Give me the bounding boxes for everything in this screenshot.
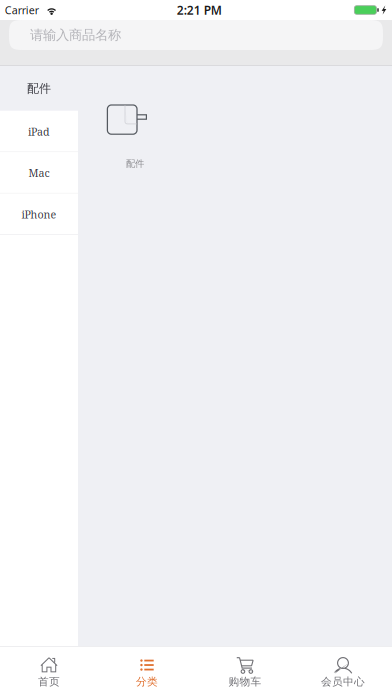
button[interactable]: iPad	[0, 111, 78, 152]
button[interactable]: 配件	[0, 66, 78, 111]
staticText: 会员中心	[321, 675, 365, 688]
staticText: 配件	[27, 81, 51, 96]
staticText: 分类	[136, 675, 158, 688]
staticText: Mac	[28, 166, 49, 180]
staticText: Carrier	[5, 3, 39, 17]
button[interactable]: Mac	[0, 152, 78, 194]
button[interactable]: 分类	[98, 646, 196, 696]
staticText: 配件	[126, 158, 144, 169]
button[interactable]: 购物车	[196, 646, 294, 696]
button[interactable]: 首页	[0, 646, 98, 696]
staticText: iPhone	[21, 207, 56, 221]
button[interactable]: 配件	[78, 105, 182, 169]
button[interactable]: iPhone	[0, 194, 78, 235]
staticText: 请输入商品名称	[30, 27, 121, 43]
staticText: 购物车	[228, 675, 261, 688]
staticText: 首页	[38, 675, 60, 688]
button[interactable]: 请输入商品名称	[9, 20, 383, 50]
staticText: 2:21 PM	[177, 2, 222, 18]
staticText: iPad	[28, 124, 50, 139]
button[interactable]: 会员中心	[294, 646, 392, 696]
